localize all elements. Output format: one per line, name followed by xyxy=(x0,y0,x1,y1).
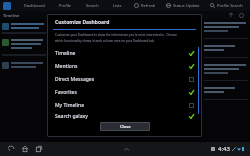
button[interactable]: Show notifications xyxy=(121,144,132,155)
button[interactable]: Refresh xyxy=(129,1,161,10)
button[interactable] xyxy=(0,37,48,51)
button[interactable] xyxy=(204,63,248,75)
button[interactable]: Timeline xyxy=(47,47,202,60)
button[interactable] xyxy=(204,86,248,94)
button[interactable]: Home xyxy=(18,142,32,156)
button[interactable]: Search xyxy=(79,1,106,10)
button[interactable]: Status and time xyxy=(208,145,247,153)
staticText: Timeline xyxy=(3,13,20,18)
button[interactable]: My Timeline xyxy=(47,99,202,112)
staticText: Favorites xyxy=(55,89,189,96)
button[interactable]: Status Update xyxy=(161,1,205,10)
staticText: Status Update xyxy=(173,3,200,8)
button[interactable]: Refresh column xyxy=(236,13,247,18)
staticText: Search galaxy xyxy=(55,113,189,120)
staticText: Search xyxy=(86,3,99,8)
staticText: Close xyxy=(120,124,131,129)
button[interactable]: Lists xyxy=(106,1,129,10)
button[interactable]: Search galaxy xyxy=(47,112,202,120)
staticText: Mentions xyxy=(55,63,189,70)
staticText: Profile Search xyxy=(217,3,243,8)
button[interactable]: Favorites xyxy=(47,86,202,99)
staticText: Customize your Dashboard to show the inf… xyxy=(55,33,177,37)
button[interactable]: Profile Search xyxy=(205,1,248,10)
staticText: Customize Dashboard xyxy=(55,19,110,26)
button[interactable]: Direct Messages xyxy=(47,73,202,86)
staticText: Dashboard xyxy=(24,3,45,8)
button[interactable]: Dashboard xyxy=(17,1,52,10)
button[interactable]: Close xyxy=(100,122,150,131)
staticText: Profile xyxy=(59,3,72,8)
staticText: My Timeline xyxy=(55,102,189,109)
staticText: Refresh xyxy=(141,3,156,8)
staticText: 4:43 xyxy=(218,145,230,153)
button[interactable] xyxy=(204,44,248,52)
button[interactable]: Back xyxy=(4,142,18,156)
button[interactable] xyxy=(0,60,48,71)
staticText: which functionality shows in each column… xyxy=(55,39,155,43)
button[interactable]: Profile xyxy=(52,1,79,10)
button[interactable]: Mentions xyxy=(47,60,202,73)
button[interactable]: App logo xyxy=(3,2,11,10)
button[interactable]: Recent apps xyxy=(32,142,46,156)
button[interactable]: Collapse xyxy=(226,13,236,17)
button[interactable] xyxy=(204,21,248,33)
staticText: Lists xyxy=(113,3,122,8)
staticText: Timeline xyxy=(55,50,189,57)
button[interactable] xyxy=(0,21,48,32)
staticText: Direct Messages xyxy=(55,76,189,83)
